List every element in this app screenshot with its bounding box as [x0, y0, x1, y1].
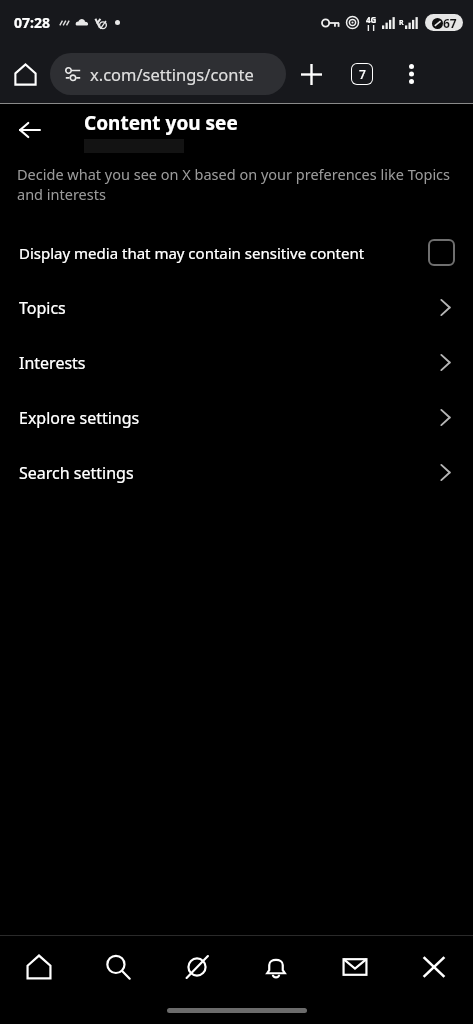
button[interactable]: Interests	[0, 335, 473, 390]
staticText: 7	[359, 66, 366, 82]
button[interactable]: Home	[0, 49, 50, 99]
staticText: 67	[443, 15, 457, 31]
staticText: R	[399, 18, 404, 28]
button[interactable]: Explore settings	[0, 390, 473, 445]
button[interactable]: More options	[388, 51, 434, 97]
staticText: Decide what you see on X based on your p…	[17, 164, 456, 205]
button[interactable]: New tab	[286, 49, 336, 99]
button[interactable]: Messages	[315, 936, 394, 998]
button[interactable]: Grok	[157, 936, 236, 998]
button[interactable]: Search	[78, 936, 157, 998]
staticText: 4G	[366, 14, 377, 25]
button[interactable]: Home	[0, 936, 78, 998]
staticText: x.com/settings/conte	[90, 63, 254, 85]
button[interactable]: Tabs, 7 open	[336, 48, 388, 100]
staticText: Display media that may contain sensitive…	[19, 243, 419, 263]
staticText: Content you see	[84, 110, 238, 136]
staticText: 07:28	[14, 13, 50, 32]
button[interactable]: Notifications	[236, 936, 315, 998]
staticText: Topics	[19, 297, 440, 319]
staticText: Search settings	[19, 462, 440, 484]
staticText: Explore settings	[19, 407, 440, 429]
staticText: Interests	[19, 352, 440, 374]
button[interactable]: x.com/settings/conte	[50, 53, 286, 95]
button[interactable]: Topics	[0, 280, 473, 335]
button[interactable]: Search settings	[0, 445, 473, 500]
button[interactable]: Back	[8, 108, 52, 152]
button[interactable]: X	[394, 936, 473, 998]
button[interactable]: Display media that may contain sensitive…	[0, 225, 473, 280]
